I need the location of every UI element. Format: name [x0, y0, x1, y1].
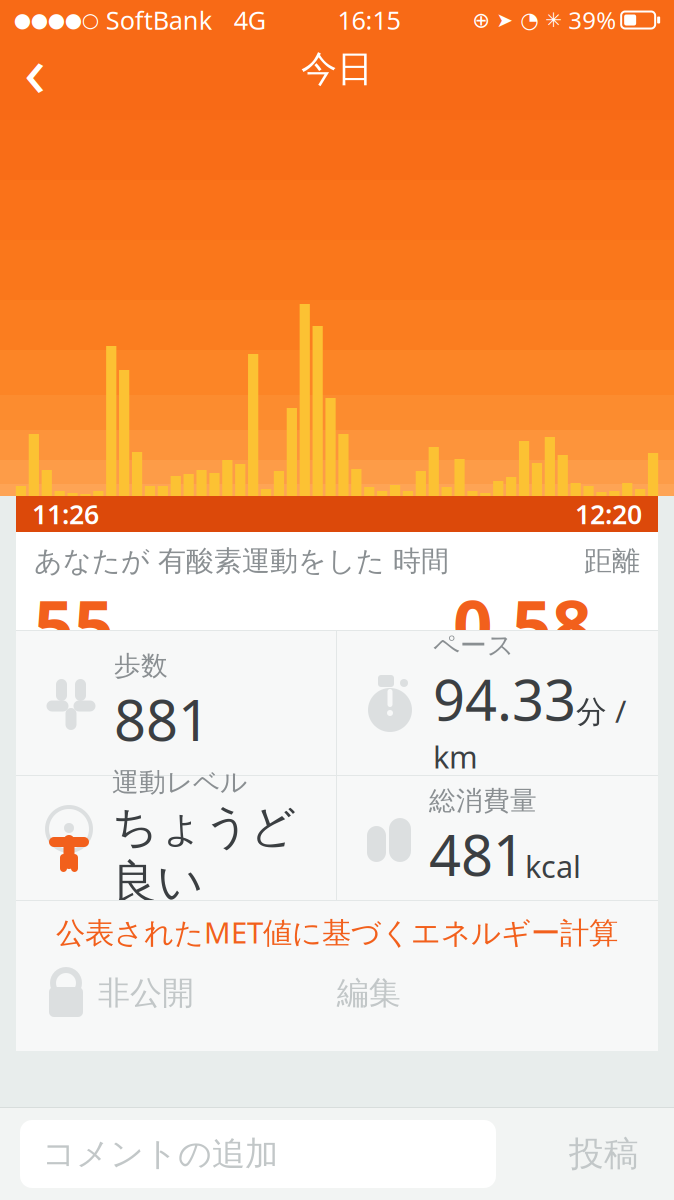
staticText: 94.33	[433, 662, 576, 736]
staticText: 16:15	[337, 3, 400, 37]
button[interactable]: 非公開	[16, 963, 194, 1023]
staticText: ➤	[490, 9, 513, 31]
staticText: 歩数	[114, 649, 168, 682]
staticText: 11:26	[32, 496, 99, 532]
staticText: kcal	[525, 846, 581, 886]
button[interactable]: 編集	[309, 963, 429, 1023]
staticText: ペース	[433, 629, 514, 662]
staticText: ‹	[24, 21, 46, 117]
staticText: ✳	[539, 9, 562, 31]
button[interactable]: 戻る	[0, 40, 70, 98]
staticText: 0.58	[453, 578, 592, 670]
button[interactable]: コメントの追加	[20, 1120, 496, 1188]
button[interactable]: 公表されたMET値に基づくエネルギー計算	[16, 901, 658, 963]
button[interactable]: 投稿	[534, 1120, 674, 1188]
staticText: 総消費量	[429, 784, 537, 817]
staticText: コメントの追加	[42, 1133, 278, 1174]
staticText: あなたが 有酸素運動をした 時間	[34, 544, 449, 578]
staticText: 481	[429, 817, 525, 892]
staticText: 分	[114, 627, 145, 664]
staticText: 距離	[584, 544, 640, 578]
staticText: ⊕	[472, 8, 490, 32]
staticText: 非公開	[98, 973, 194, 1013]
staticText: Km	[592, 624, 640, 664]
staticText: 881	[114, 682, 210, 757]
staticText: 編集	[337, 973, 401, 1013]
staticText: 運動レベル	[112, 766, 247, 799]
staticText: 投稿	[569, 1133, 639, 1175]
staticText: SoftBank	[99, 3, 213, 37]
staticText: ちょうど良い	[112, 799, 296, 910]
staticText: ◔	[513, 8, 539, 32]
staticText: km	[433, 736, 478, 777]
staticText: 55	[34, 578, 114, 670]
staticText: 今日	[301, 47, 373, 91]
staticText: ●●●●○	[14, 9, 99, 31]
staticText: 12:20	[575, 496, 642, 532]
staticText: 39%	[562, 4, 616, 36]
staticText: 4G	[213, 3, 266, 37]
staticText: 分 /	[576, 690, 626, 731]
staticText: 公表されたMET値に基づくエネルギー計算	[56, 912, 618, 951]
